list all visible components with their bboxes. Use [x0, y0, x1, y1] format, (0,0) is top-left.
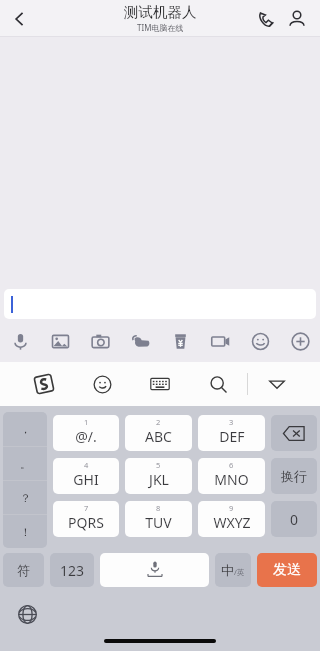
staticText: 6 [229, 460, 234, 470]
button[interactable]: 符 [3, 553, 44, 587]
staticText: TIM电脑在线 [137, 22, 184, 33]
button[interactable]: 6 [198, 458, 265, 494]
staticText: 1 [84, 417, 89, 427]
staticText: 测试机器人 [124, 3, 197, 21]
button[interactable]: Emoji [240, 326, 280, 356]
button[interactable]: 0 [271, 501, 317, 537]
staticText: 0 [290, 510, 299, 529]
button[interactable]: Hide keyboard [248, 362, 306, 406]
button[interactable]: 中 [215, 553, 251, 587]
button[interactable]: Search [189, 362, 247, 406]
button[interactable]: 7 [53, 501, 119, 537]
button[interactable]: Red packet [160, 326, 200, 356]
staticText: ？ [20, 491, 31, 505]
staticText: @/. [75, 427, 97, 446]
button[interactable]: Profile [282, 4, 312, 34]
button[interactable]: Emoji [73, 362, 131, 406]
button[interactable]: 换行 [271, 458, 317, 494]
staticText: 9 [229, 503, 234, 513]
staticText: PQRS [68, 513, 104, 532]
staticText: ABC [145, 427, 172, 446]
button[interactable]: 5 [125, 458, 192, 494]
button[interactable]: Voice [120, 326, 160, 356]
button[interactable]: 发送 [257, 553, 317, 587]
button[interactable]: ！ [3, 515, 47, 548]
staticText: TUV [145, 513, 172, 532]
staticText: JKL [149, 470, 169, 489]
button[interactable]: Space [100, 553, 209, 587]
staticText: 换行 [281, 468, 307, 484]
staticText: 3 [229, 417, 234, 427]
staticText: 123 [60, 561, 85, 580]
button[interactable]: Keyboard layout [131, 362, 189, 406]
button[interactable]: Voice message [0, 326, 40, 356]
staticText: MNO [214, 470, 249, 489]
staticText: GHI [73, 470, 99, 489]
staticText: 8 [156, 503, 161, 513]
button[interactable]: 8 [125, 501, 192, 537]
button[interactable]: Delete [271, 415, 317, 451]
staticText: 4 [84, 460, 89, 470]
staticText: 。 [20, 457, 31, 471]
staticText: 符 [17, 562, 30, 578]
staticText: ！ [20, 525, 31, 539]
staticText: 7 [84, 503, 89, 513]
button[interactable]: Photo [40, 326, 80, 356]
button[interactable] [4, 289, 316, 319]
staticText: 5 [156, 460, 161, 470]
button[interactable]: 4 [53, 458, 119, 494]
button[interactable]: 3 [198, 415, 265, 451]
button[interactable]: ？ [3, 481, 47, 514]
staticText: WXYZ [213, 513, 251, 532]
staticText: 2 [156, 417, 161, 427]
button[interactable]: GIF [200, 326, 240, 356]
button[interactable]: Back [0, 0, 40, 37]
staticText: ， [20, 422, 31, 436]
button[interactable]: 123 [50, 553, 94, 587]
button[interactable]: Call [252, 4, 282, 34]
button[interactable]: Language [12, 599, 42, 629]
button[interactable]: More [280, 326, 320, 356]
staticText: /英 [234, 567, 245, 577]
button[interactable]: 1 [53, 415, 119, 451]
button[interactable]: ， [3, 412, 47, 446]
staticText: DEF [219, 427, 245, 446]
staticText: 发送 [273, 561, 301, 579]
button[interactable]: Camera [80, 326, 120, 356]
button[interactable]: 2 [125, 415, 192, 451]
staticText: 中 [221, 562, 234, 578]
button[interactable]: 9 [198, 501, 265, 537]
button[interactable]: Sogou input [14, 362, 73, 406]
